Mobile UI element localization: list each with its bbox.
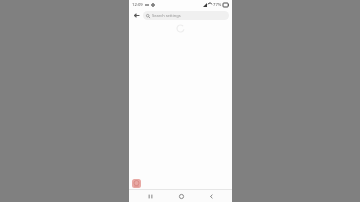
button[interactable]: Back	[132, 11, 141, 20]
button[interactable]: Recent apps	[141, 190, 159, 202]
button[interactable]: App shortcut	[132, 179, 141, 188]
button[interactable]: Back	[202, 190, 220, 202]
button[interactable]: Search settings	[143, 11, 229, 20]
button[interactable]: Home	[172, 190, 190, 202]
staticText: Search settings	[152, 13, 181, 18]
staticText: 77%	[213, 2, 222, 8]
staticText: 12:09	[132, 2, 143, 8]
